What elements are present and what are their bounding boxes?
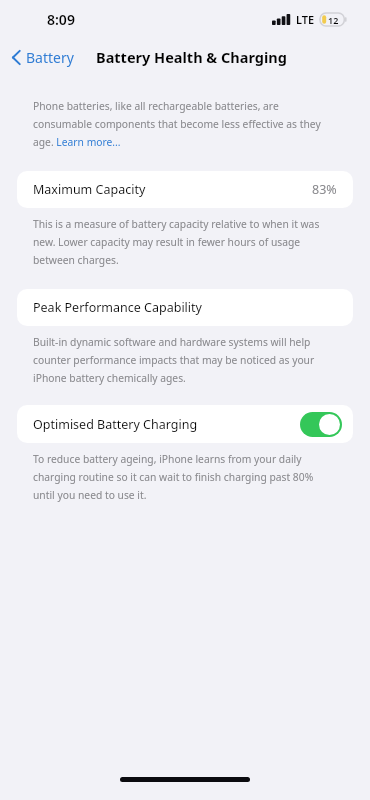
button[interactable]: Optimised Battery Charging toggle, on <box>300 412 342 437</box>
staticText: Peak Performance Capability <box>33 299 202 316</box>
staticText: 8:09 <box>47 10 75 29</box>
staticText: Maximum Capacity <box>33 181 146 198</box>
button[interactable]: Battery <box>8 44 78 71</box>
staticText: LTE <box>296 12 315 27</box>
staticText: This is a measure of battery capacity re… <box>33 217 337 267</box>
button[interactable]: Peak Performance Capability <box>17 289 353 326</box>
button[interactable]: Maximum Capacity <box>17 171 353 208</box>
staticText: Battery Health & Charging <box>96 47 287 67</box>
staticText: 12 <box>328 14 339 26</box>
staticText: Battery <box>26 48 74 67</box>
staticText: Phone batteries, like all rechargeable b… <box>33 99 337 149</box>
staticText: Built-in dynamic software and hardware s… <box>33 335 337 385</box>
staticText: 83% <box>312 181 337 198</box>
staticText: To reduce battery ageing, iPhone learns … <box>33 452 337 502</box>
staticText: Optimised Battery Charging <box>33 416 198 433</box>
